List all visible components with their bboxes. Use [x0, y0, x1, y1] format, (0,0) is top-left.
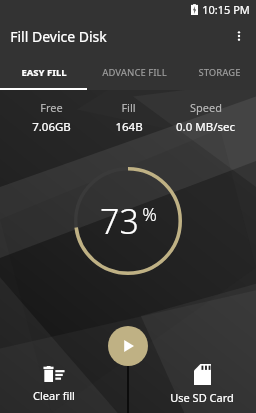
button[interactable]: Clear fill	[0, 355, 108, 413]
staticText: %	[142, 202, 157, 227]
staticText: 7.06GB	[32, 119, 71, 135]
staticText: 73	[100, 198, 139, 244]
staticText: Free	[40, 100, 63, 115]
staticText: 164B	[115, 119, 143, 135]
staticText: STORAGE	[198, 66, 241, 79]
staticText: EASY FILL	[21, 66, 67, 79]
button[interactable]: STORAGE	[182, 54, 256, 90]
staticText: Speed	[190, 100, 222, 115]
button[interactable]: Start fill	[108, 326, 148, 366]
staticText: 0.0 MB/sec	[176, 119, 235, 135]
staticText: Use SD Card	[170, 390, 234, 405]
button[interactable]: ADVANCE FILL	[87, 54, 182, 90]
staticText: Fill Device Disk	[10, 27, 107, 46]
button[interactable]: EASY FILL	[0, 54, 87, 90]
staticText: ADVANCE FILL	[102, 66, 167, 79]
staticText: Fill	[121, 100, 136, 115]
staticText: 10:15 PM	[202, 2, 250, 17]
staticText: Clear fill	[33, 388, 75, 403]
button[interactable]: More options	[222, 19, 256, 53]
button[interactable]: Use SD Card	[148, 355, 256, 413]
